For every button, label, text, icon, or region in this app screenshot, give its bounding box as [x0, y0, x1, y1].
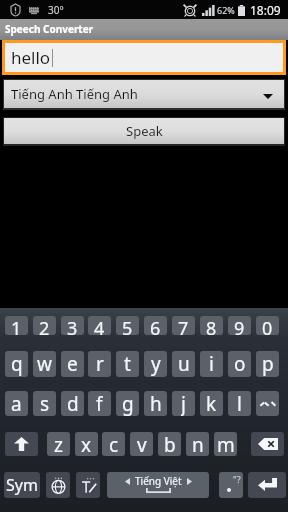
staticText: q	[11, 351, 23, 377]
staticText: a	[11, 391, 22, 416]
staticText: o	[234, 351, 246, 377]
button[interactable]	[256, 391, 279, 416]
button[interactable]: Handwriting	[76, 472, 100, 498]
staticText: 6	[150, 316, 161, 335]
staticText: k	[206, 391, 217, 416]
button[interactable]: z	[47, 432, 70, 456]
button[interactable]: y	[144, 351, 167, 377]
staticText: b	[164, 432, 176, 456]
button[interactable]: Enter	[248, 472, 286, 498]
button[interactable]: s	[33, 391, 56, 416]
staticText: t	[124, 351, 131, 377]
staticText: e	[67, 351, 78, 377]
button[interactable]: w	[33, 351, 56, 377]
staticText: m	[217, 432, 235, 456]
staticText: u	[178, 351, 190, 377]
button[interactable]: q	[5, 351, 28, 377]
staticText: d	[67, 391, 79, 416]
staticText: Tiếng Việt	[135, 474, 182, 488]
button[interactable]: 3	[61, 316, 84, 335]
button[interactable]: g	[116, 391, 139, 416]
button[interactable]: 8	[200, 316, 223, 335]
staticText: 9	[234, 316, 245, 335]
staticText: z	[54, 432, 63, 456]
button[interactable]: k	[200, 391, 223, 416]
staticText: 4	[94, 316, 105, 335]
button[interactable]: 2	[33, 316, 56, 335]
staticText: Speech Converter	[5, 22, 94, 36]
staticText: 2	[39, 316, 50, 335]
button[interactable]: d	[61, 391, 84, 416]
staticText: w	[37, 351, 52, 377]
staticText: 62%	[217, 4, 235, 16]
button[interactable]: 0	[256, 316, 279, 335]
button[interactable]: b	[158, 432, 181, 456]
staticText: f	[96, 391, 103, 416]
button[interactable]: Change language	[46, 472, 70, 498]
staticText: Tiếng Anh Tiếng Anh	[11, 85, 138, 103]
button[interactable]: i	[200, 351, 223, 377]
staticText: v	[137, 432, 147, 456]
staticText: s	[40, 391, 50, 416]
button[interactable]: 9	[228, 316, 251, 335]
button[interactable]: o	[228, 351, 251, 377]
staticText: c	[109, 432, 119, 456]
button[interactable]: 1	[5, 316, 28, 335]
button[interactable]: Period	[219, 472, 243, 498]
button[interactable]: h	[144, 391, 167, 416]
button[interactable]: e	[61, 351, 84, 377]
button[interactable]: Sym	[4, 472, 40, 498]
button[interactable]: n	[186, 432, 209, 456]
staticText: h	[150, 391, 162, 416]
staticText: 18:09	[250, 2, 281, 18]
button[interactable]: r	[88, 351, 111, 377]
staticText: i	[209, 351, 214, 377]
button[interactable]: hello	[5, 43, 283, 72]
button[interactable]: a	[5, 391, 28, 416]
staticText: y	[151, 351, 161, 377]
staticText: j	[181, 391, 186, 416]
staticText: 3	[67, 316, 78, 335]
staticText: 5	[122, 316, 133, 335]
button[interactable]: 4	[88, 316, 111, 335]
button[interactable]: Tiếng Anh Tiếng Anh	[4, 80, 284, 108]
staticText: 7	[178, 316, 189, 335]
button[interactable]: x	[75, 432, 98, 456]
staticText: l	[237, 391, 242, 416]
button[interactable]: u	[172, 351, 195, 377]
staticText: "?	[233, 473, 241, 485]
staticText: 0	[262, 316, 273, 335]
button[interactable]: p	[256, 351, 279, 377]
button[interactable]: f	[88, 391, 111, 416]
staticText: n	[192, 432, 204, 456]
button[interactable]: t	[116, 351, 139, 377]
button[interactable]: 7	[172, 316, 195, 335]
staticText: Speak	[126, 122, 163, 140]
staticText: g	[122, 391, 134, 416]
staticText: r	[96, 351, 104, 377]
staticText: x	[81, 432, 92, 456]
button[interactable]: Backspace	[251, 432, 284, 456]
button[interactable]: l	[228, 391, 251, 416]
button[interactable]: v	[130, 432, 153, 456]
button[interactable]: Tiếng Việt	[107, 472, 209, 498]
staticText: 30°	[48, 3, 64, 17]
staticText: p	[262, 351, 274, 377]
staticText: 8	[206, 316, 217, 335]
button[interactable]: m	[214, 432, 237, 456]
staticText: 1	[11, 316, 22, 335]
button[interactable]: 6	[144, 316, 167, 335]
staticText: hello	[11, 46, 51, 69]
button[interactable]: Speak	[4, 118, 284, 144]
button[interactable]: 5	[116, 316, 139, 335]
button[interactable]: Shift	[5, 432, 38, 456]
button[interactable]: c	[102, 432, 125, 456]
staticText: Sym	[6, 474, 38, 496]
button[interactable]: j	[172, 391, 195, 416]
